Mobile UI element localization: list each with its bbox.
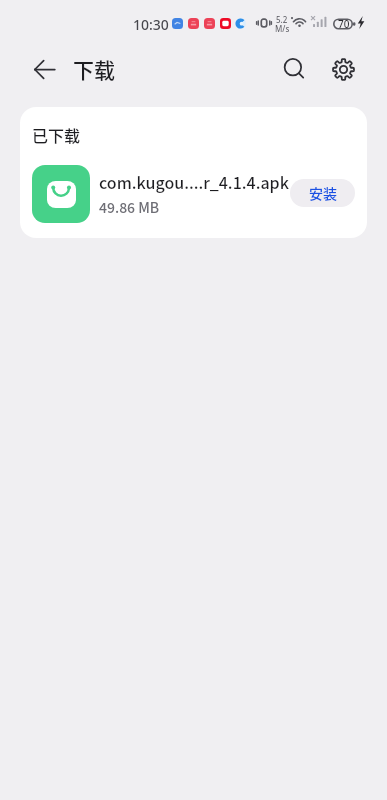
staticText: com.kugou....r_4.1.4.apk	[99, 170, 289, 193]
staticText: 已下载	[32, 123, 81, 146]
button[interactable]: 安装	[290, 179, 355, 207]
staticText: 49.86 MB	[99, 197, 160, 217]
button[interactable]: Settings	[323, 49, 363, 89]
staticText: 5.2	[276, 14, 288, 25]
button[interactable]: Search	[274, 49, 314, 89]
button[interactable]: com.kugou....r_4.1.4.apk	[20, 158, 367, 230]
button[interactable]: Back	[24, 49, 64, 89]
staticText: 安装	[309, 183, 337, 203]
staticText: M/s	[275, 23, 290, 34]
staticText: 下载	[73, 54, 115, 84]
staticText: 70	[338, 17, 350, 31]
staticText: 10:30	[133, 15, 169, 34]
